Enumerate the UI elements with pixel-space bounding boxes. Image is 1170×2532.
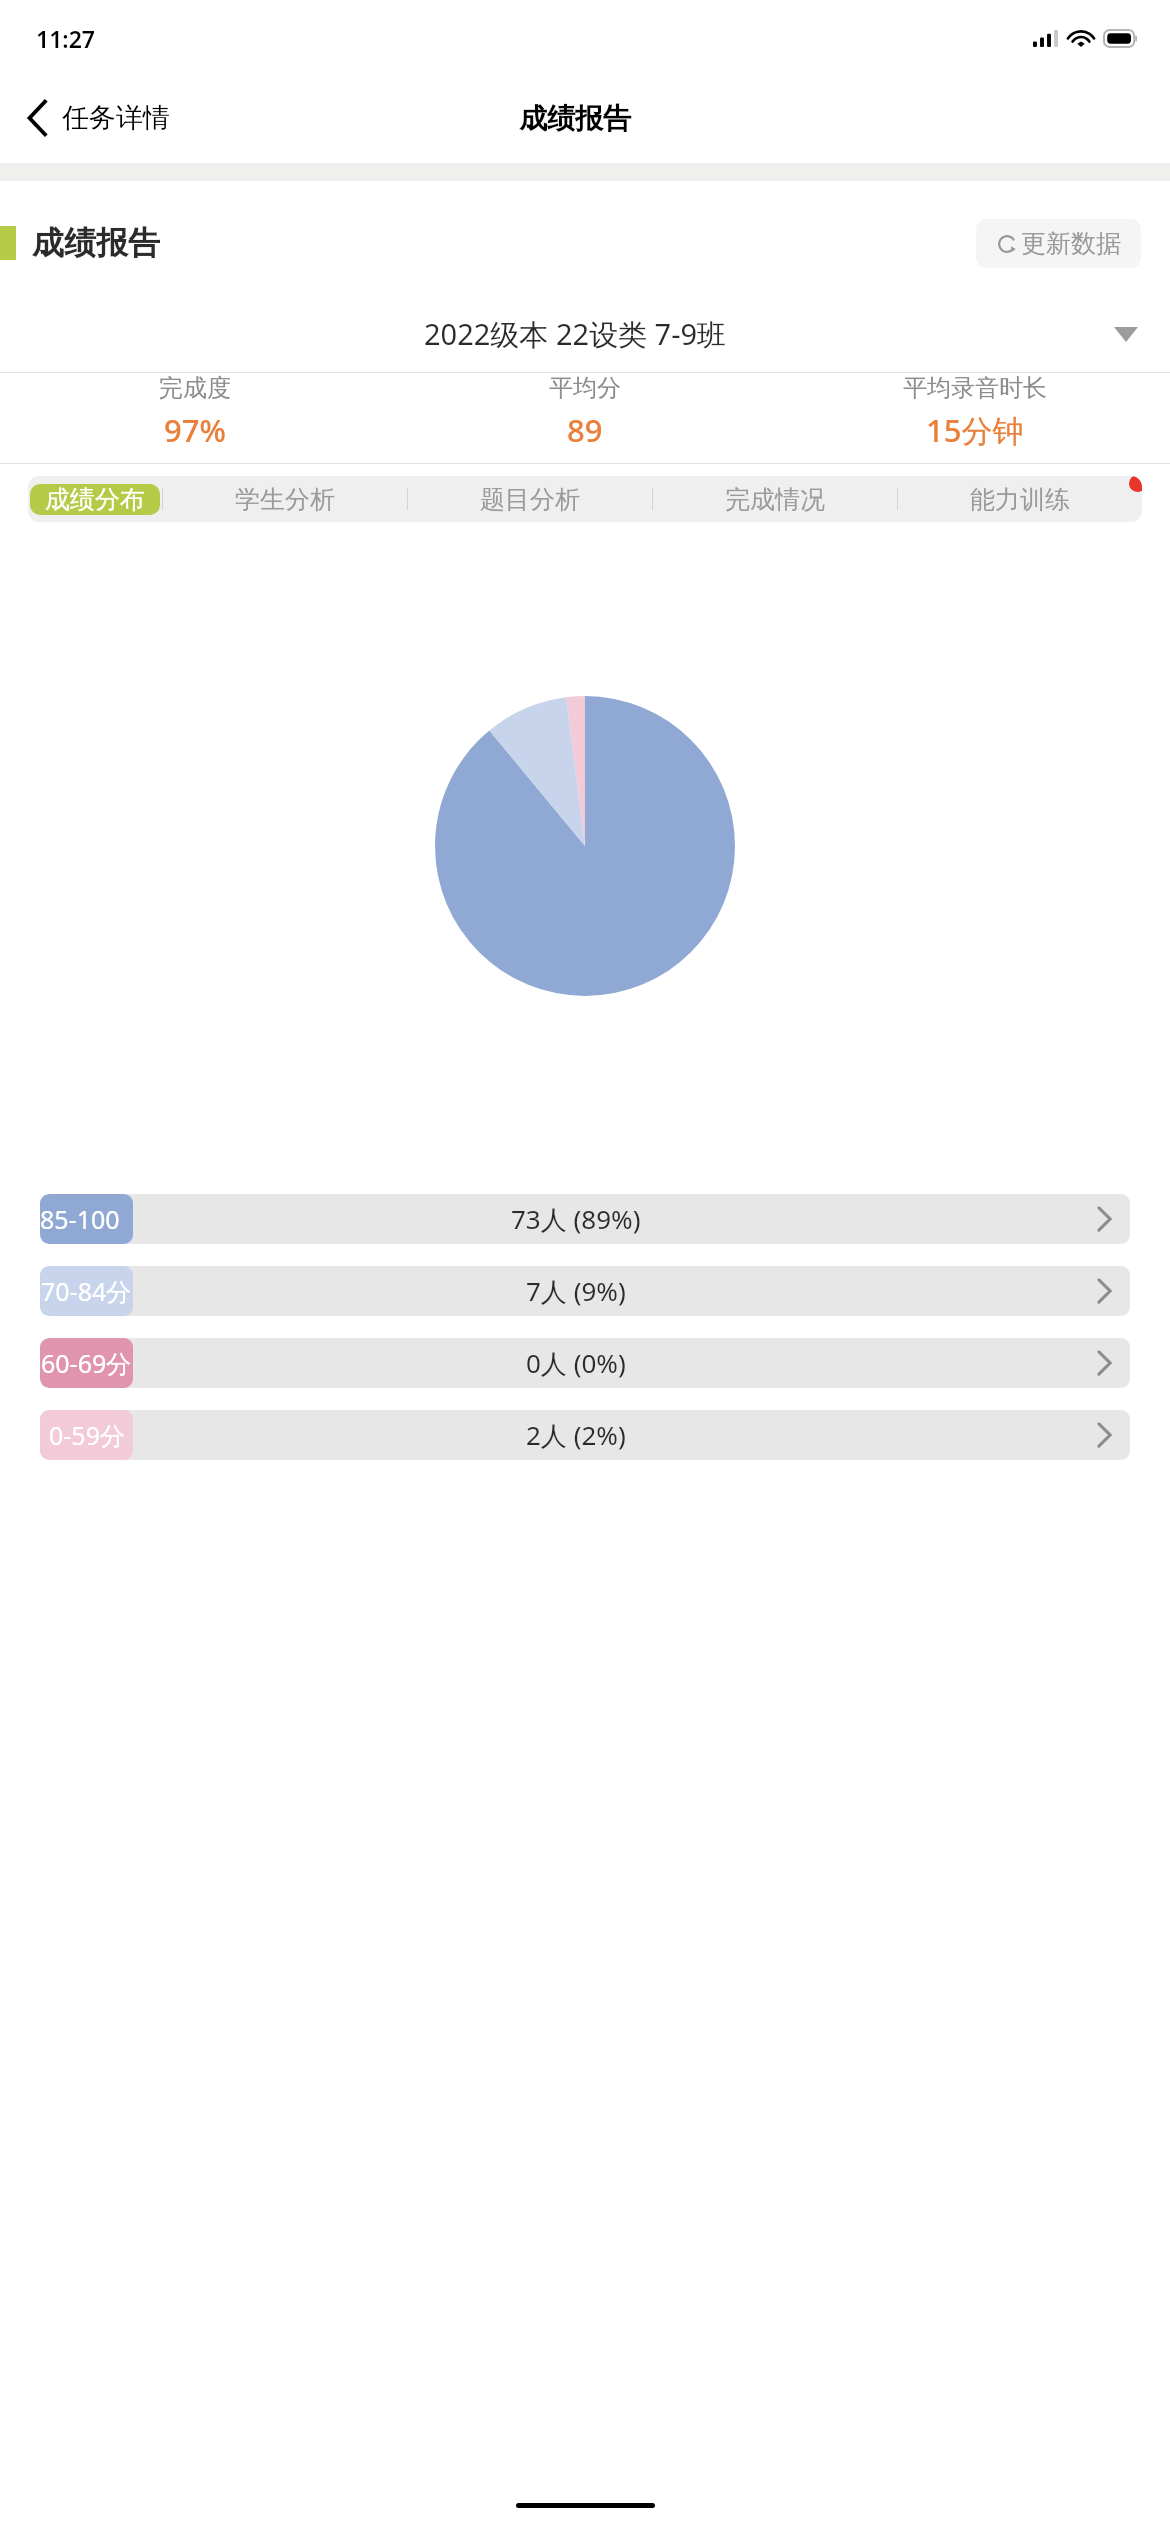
staticText: 成绩报告 <box>32 223 160 263</box>
button[interactable]: 成绩分布 <box>30 484 160 515</box>
button[interactable]: 70-84分 <box>40 1266 1130 1316</box>
button[interactable]: 平均录音时长 <box>780 373 1170 451</box>
staticText: 70-84分 <box>41 1274 132 1308</box>
other: Score distribution pie chart <box>435 696 735 996</box>
staticText: 89 <box>567 409 603 451</box>
button[interactable]: 题目分析 <box>408 484 652 515</box>
staticText: 73人 (89%) <box>511 1201 641 1237</box>
staticText: 成绩分布 <box>45 484 145 515</box>
other: Select class <box>1114 327 1138 342</box>
button[interactable]: 60-69分 <box>40 1338 1130 1388</box>
staticText: 题目分析 <box>480 484 580 515</box>
staticText: 完成情况 <box>725 484 825 515</box>
staticText: 15分钟 <box>926 409 1024 451</box>
other: Back <box>26 99 48 137</box>
staticText: 更新数据 <box>1021 228 1121 259</box>
button[interactable]: 更新数据 <box>976 219 1141 268</box>
staticText: 成绩报告 <box>519 101 631 136</box>
staticText: 0人 (0%) <box>526 1345 626 1381</box>
staticText: 97% <box>164 409 226 451</box>
button[interactable]: 85-100分 <box>40 1194 1130 1244</box>
staticText: 0-59分 <box>49 1418 125 1452</box>
staticText: 学生分析 <box>235 484 335 515</box>
button[interactable]: 完成情况 <box>653 484 897 515</box>
staticText: 2人 (2%) <box>526 1417 626 1453</box>
staticText: 60-69分 <box>41 1346 132 1380</box>
staticText: 能力训练 <box>970 484 1070 515</box>
staticText: 任务详情 <box>62 101 170 135</box>
button[interactable]: 2022级本 22设类 7-9班 <box>0 305 1170 363</box>
staticText: 85-100分 <box>40 1202 133 1236</box>
button[interactable]: 0-59分 <box>40 1410 1130 1460</box>
staticText: 平均分 <box>549 373 621 403</box>
staticText: 完成度 <box>159 373 231 403</box>
button[interactable]: 学生分析 <box>163 484 407 515</box>
staticText: 11:27 <box>36 23 95 54</box>
staticText: 7人 (9%) <box>526 1273 626 1309</box>
staticText: 2022级本 22设类 7-9班 <box>424 314 727 354</box>
button[interactable]: 能力训练 <box>898 484 1142 515</box>
staticText: 平均录音时长 <box>903 373 1047 403</box>
button[interactable]: 平均分 <box>390 373 780 451</box>
button[interactable]: 完成度 <box>0 373 390 451</box>
button[interactable]: Back <box>0 91 184 145</box>
